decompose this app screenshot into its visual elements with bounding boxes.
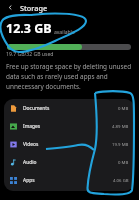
staticText: Storage — [20, 3, 48, 13]
button[interactable]: Videos — [4, 135, 134, 153]
button[interactable]: Apps — [4, 171, 134, 189]
button[interactable]: Documents — [4, 99, 134, 117]
staticText: 4.89 MB — [112, 123, 129, 129]
staticText: 4.06 GB — [113, 177, 129, 183]
button[interactable]: Images — [4, 117, 134, 135]
staticText: Documents — [23, 105, 50, 112]
staticText: Videos — [23, 141, 39, 148]
staticText: Apps — [23, 177, 35, 184]
staticText: 12.3 GB — [6, 20, 52, 37]
staticText: 0 MB — [118, 105, 129, 111]
staticText: available — [54, 29, 75, 36]
staticText: Audio — [23, 159, 37, 166]
button[interactable]: Back — [4, 1, 17, 14]
staticText: Images — [23, 123, 41, 130]
staticText: 0 MB — [118, 159, 129, 165]
staticText: 19.7 GB/32 GB used — [6, 51, 54, 58]
button[interactable]: Audio — [4, 153, 134, 171]
staticText: 19.9 MB — [112, 141, 129, 147]
staticText: Free up storage space by deleting unused… — [6, 62, 134, 90]
